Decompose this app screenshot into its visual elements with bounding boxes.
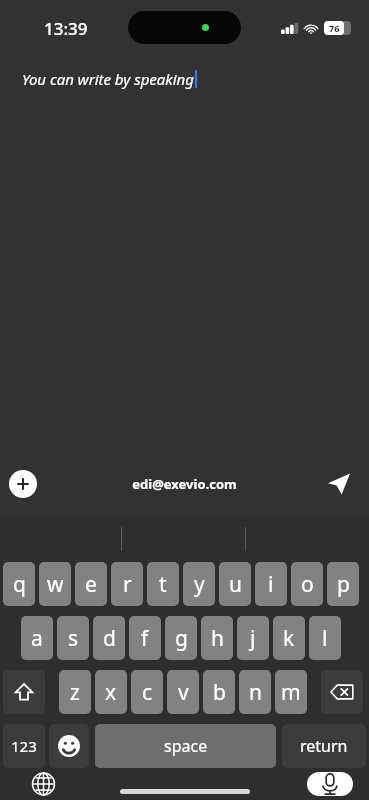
button[interactable]: Dictate bbox=[307, 772, 353, 796]
staticText: n bbox=[249, 678, 262, 707]
button[interactable]: Change keyboard language bbox=[26, 772, 60, 796]
staticText: r bbox=[123, 570, 132, 599]
staticText: a bbox=[31, 624, 43, 653]
staticText: 123 bbox=[11, 736, 37, 756]
button[interactable]: d bbox=[93, 616, 125, 660]
button[interactable]: o bbox=[291, 562, 323, 606]
staticText: g bbox=[175, 624, 188, 653]
button[interactable]: s bbox=[57, 616, 89, 660]
button[interactable]: c bbox=[131, 670, 163, 714]
staticText: o bbox=[301, 570, 314, 599]
button[interactable]: p bbox=[327, 562, 359, 606]
staticText: t bbox=[159, 570, 167, 599]
button[interactable]: n bbox=[239, 670, 271, 714]
staticText: x bbox=[105, 678, 117, 707]
button[interactable]: e bbox=[75, 562, 107, 606]
button[interactable]: edi@exevio.com bbox=[132, 475, 237, 493]
button[interactable]: y bbox=[183, 562, 215, 606]
button[interactable]: k bbox=[273, 616, 305, 660]
staticText: v bbox=[178, 678, 189, 707]
button[interactable]: Send bbox=[322, 467, 356, 501]
button[interactable]: space bbox=[95, 724, 276, 768]
staticText: m bbox=[281, 678, 301, 707]
staticText: z bbox=[70, 678, 80, 707]
staticText: 76 bbox=[329, 22, 340, 34]
staticText: e bbox=[85, 570, 97, 599]
staticText: return bbox=[300, 735, 348, 757]
button[interactable]: h bbox=[201, 616, 233, 660]
staticText: w bbox=[47, 570, 64, 599]
staticText: p bbox=[337, 570, 350, 599]
button[interactable]: Emoji bbox=[49, 724, 89, 768]
button[interactable]: x bbox=[95, 670, 127, 714]
button[interactable]: Add attachment bbox=[9, 470, 37, 498]
staticText: 13:39 bbox=[44, 17, 88, 40]
button[interactable]: v bbox=[167, 670, 199, 714]
button[interactable]: t bbox=[147, 562, 179, 606]
staticText: h bbox=[211, 624, 224, 653]
button[interactable]: g bbox=[165, 616, 197, 660]
staticText: u bbox=[229, 570, 242, 599]
staticText: f bbox=[141, 624, 149, 653]
staticText: y bbox=[194, 570, 205, 599]
staticText: l bbox=[322, 624, 328, 653]
button[interactable]: z bbox=[59, 670, 91, 714]
button[interactable]: r bbox=[111, 562, 143, 606]
staticText: k bbox=[283, 624, 295, 653]
staticText: space bbox=[164, 735, 208, 757]
staticText: i bbox=[268, 570, 274, 599]
staticText: j bbox=[250, 624, 256, 653]
button[interactable]: Backspace bbox=[321, 670, 363, 714]
button[interactable]: u bbox=[219, 562, 251, 606]
button[interactable]: return bbox=[282, 724, 366, 768]
staticText: s bbox=[68, 624, 79, 653]
staticText: b bbox=[213, 678, 226, 707]
button[interactable]: q bbox=[3, 562, 35, 606]
staticText: q bbox=[13, 570, 26, 599]
button[interactable]: m bbox=[275, 670, 307, 714]
button[interactable]: w bbox=[39, 562, 71, 606]
button[interactable]: j bbox=[237, 616, 269, 660]
button[interactable]: f bbox=[129, 616, 161, 660]
button[interactable]: Shift bbox=[3, 670, 45, 714]
button[interactable]: 123 bbox=[3, 724, 45, 768]
button[interactable]: i bbox=[255, 562, 287, 606]
staticText: d bbox=[103, 624, 116, 653]
staticText: You can write by speaking bbox=[22, 69, 194, 89]
button[interactable]: a bbox=[21, 616, 53, 660]
button[interactable]: l bbox=[309, 616, 341, 660]
button[interactable]: b bbox=[203, 670, 235, 714]
staticText: c bbox=[142, 678, 153, 707]
